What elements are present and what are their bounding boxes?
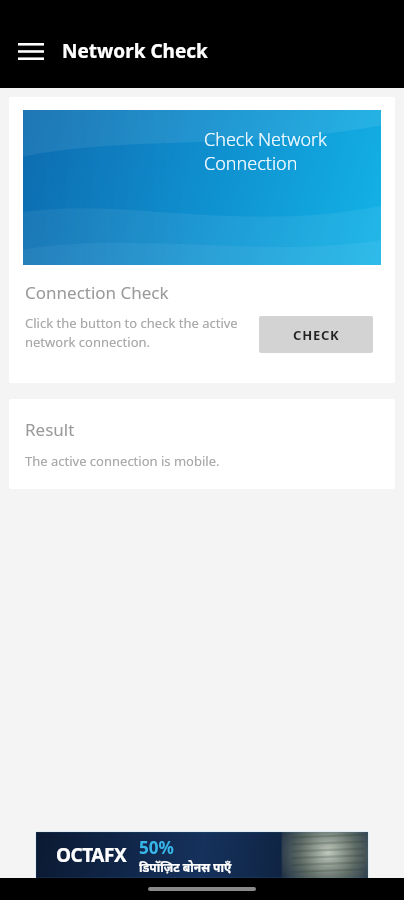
staticText: Click the button to check the active net… bbox=[25, 314, 255, 351]
staticText: OCTAFX bbox=[56, 842, 127, 868]
staticText: CHECK bbox=[293, 326, 340, 344]
button[interactable]: Open navigation drawer bbox=[10, 30, 52, 72]
staticText: Network Check bbox=[62, 38, 208, 64]
button[interactable]: Result bbox=[9, 399, 395, 489]
button[interactable]: CHECK bbox=[259, 316, 373, 353]
staticText: The active connection is mobile. bbox=[25, 452, 220, 470]
staticText: Connection Check bbox=[25, 281, 169, 304]
staticText: Result bbox=[25, 418, 75, 441]
staticText: डिपॉज़िट बोनस पाएँ bbox=[139, 859, 232, 875]
button[interactable]: Check Network Connection bbox=[9, 97, 395, 383]
button[interactable]: Advertisement bbox=[36, 832, 368, 878]
staticText: 50% bbox=[139, 836, 174, 859]
staticText: Check Network Connection bbox=[204, 127, 328, 175]
